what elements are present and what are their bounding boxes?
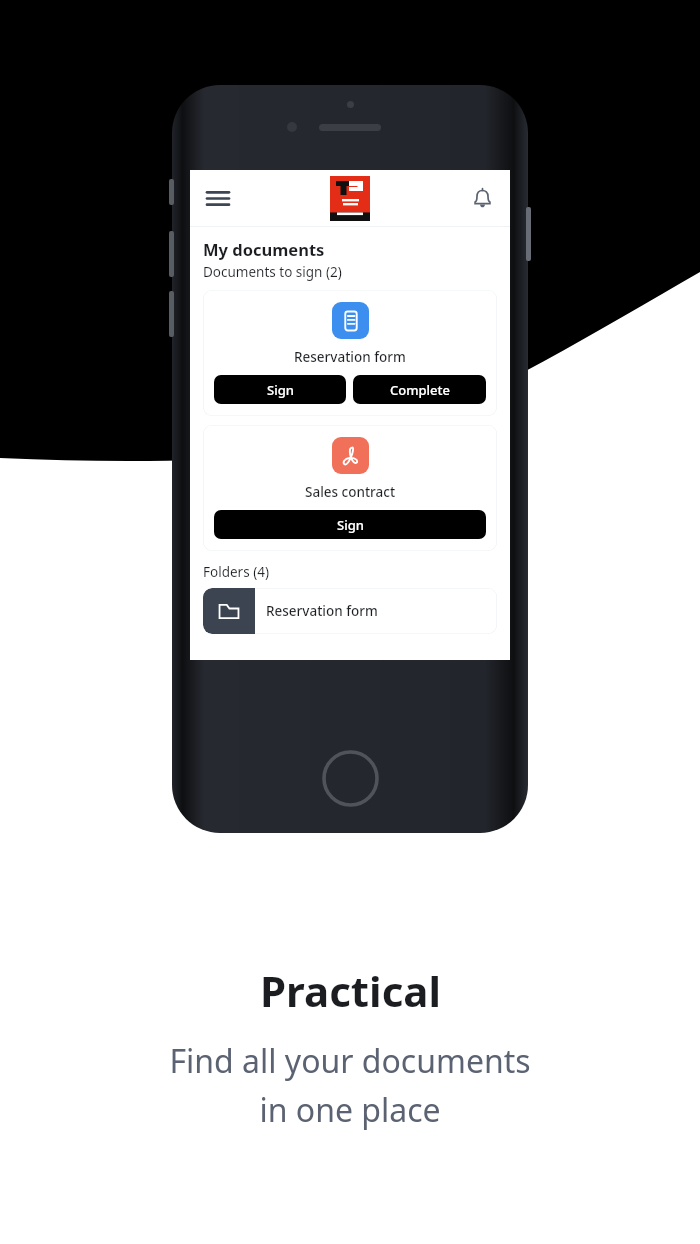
staticText: Practical [260, 962, 441, 1019]
staticText: Sign [267, 381, 294, 399]
button[interactable]: Notifications [465, 181, 499, 215]
staticText: Documents to sign (2) [203, 263, 342, 281]
staticText: Reservation form [294, 348, 406, 366]
staticText: Complete [390, 381, 450, 399]
button[interactable]: Sales contract [203, 425, 497, 551]
button[interactable]: Open navigation menu [201, 181, 235, 215]
button[interactable]: Reservation form [203, 588, 497, 634]
staticText: Sign [337, 516, 364, 534]
staticText: Reservation form [266, 602, 378, 620]
button[interactable]: Sign [214, 375, 346, 404]
button[interactable]: Complete [353, 375, 486, 404]
staticText: Find all your documents in one place [169, 1039, 531, 1132]
staticText: Folders (4) [203, 563, 269, 581]
button[interactable]: Reservation form [203, 290, 497, 416]
button[interactable]: Sign [214, 510, 486, 539]
staticText: Sales contract [305, 483, 396, 501]
staticText: My documents [203, 238, 325, 260]
